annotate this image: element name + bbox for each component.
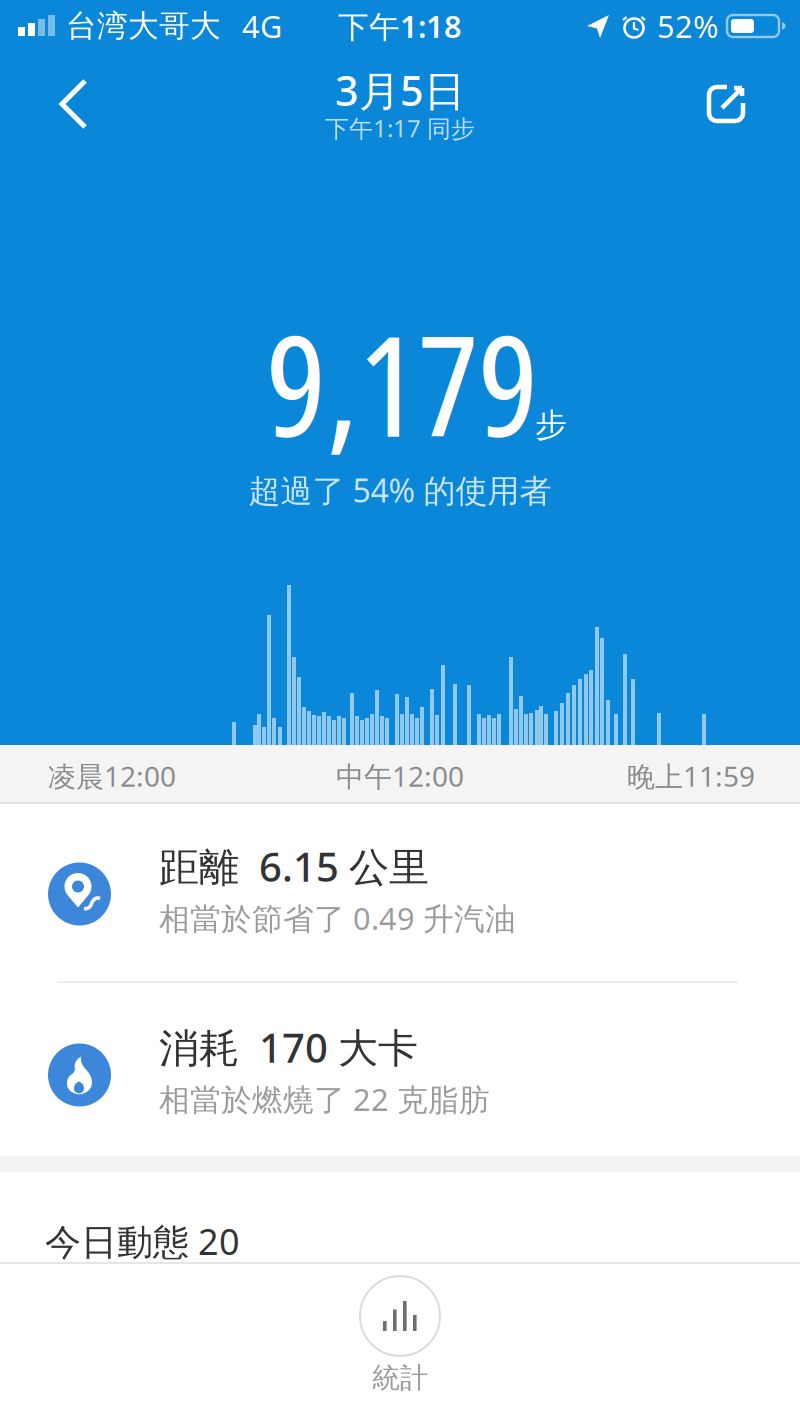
staticText: 下午1:17 同步 <box>325 112 475 144</box>
staticText: 台湾大哥大 <box>66 7 221 45</box>
staticText: 統計 <box>372 1361 428 1395</box>
staticText: 相當於燃燒了 22 克脂肪 <box>159 1079 490 1119</box>
button[interactable]: Share <box>697 75 755 133</box>
staticText: 今日動態 20 <box>45 1217 240 1265</box>
staticText: 相當於節省了 0.49 升汽油 <box>159 898 516 938</box>
staticText: 52% <box>657 6 718 46</box>
staticText: 晚上11:59 <box>627 757 755 795</box>
button[interactable]: 消耗 170 大卡 <box>0 995 800 1145</box>
staticText: 4G <box>242 6 282 46</box>
staticText: 超過了 54% 的使用者 <box>248 469 551 511</box>
staticText: 中午12:00 <box>336 757 464 795</box>
button[interactable]: 統計 <box>360 1276 440 1356</box>
staticText: 凌晨12:00 <box>48 757 176 795</box>
button[interactable]: Back <box>49 77 103 131</box>
staticText: 下午1:18 <box>338 6 462 46</box>
staticText: 消耗 170 大卡 <box>159 1021 418 1074</box>
staticText: 9,179 <box>266 289 538 477</box>
staticText: 步 <box>535 405 567 445</box>
staticText: 3月5日 <box>335 63 465 117</box>
staticText: 距離 6.15 公里 <box>159 840 429 893</box>
button[interactable]: 距離 6.15 公里 <box>0 814 800 964</box>
